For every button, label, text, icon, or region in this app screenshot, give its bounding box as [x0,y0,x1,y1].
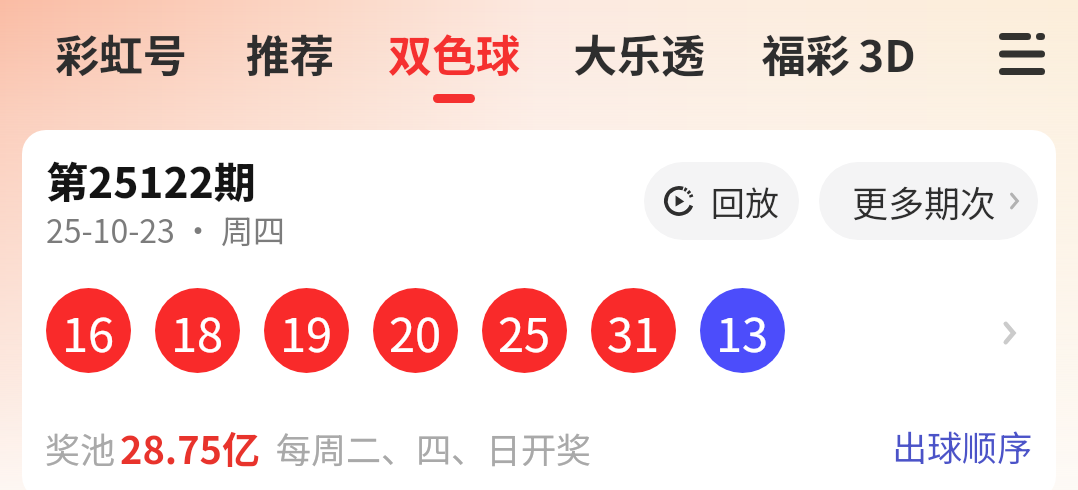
staticText: 福彩 3D [761,21,916,85]
staticText: 16 [62,297,115,365]
staticText: 25-10-23 · 周四 [46,206,286,252]
staticText: 31 [607,297,660,365]
staticText: 奖池 [45,422,116,473]
button[interactable]: 第25122期 [22,130,1056,490]
staticText: 13 [716,297,769,365]
staticText: 19 [280,297,333,365]
staticText: 25 [498,297,551,365]
button[interactable]: 彩虹号 [43,13,199,102]
button[interactable]: 大乐透 [561,13,717,102]
button[interactable]: More details [979,303,1039,363]
staticText: 出球顺序 [892,420,1033,471]
button[interactable]: 回放 [644,162,799,240]
staticText: 彩虹号 [55,21,187,85]
button[interactable]: 更多期次 [819,162,1038,240]
button[interactable]: 推荐 [234,13,346,102]
staticText: 每周二、四、日开奖 [276,422,592,473]
button[interactable]: 出球顺序 [884,412,1041,479]
button[interactable]: 双色球 [376,13,532,111]
staticText: 双色球 [388,21,520,85]
staticText: 更多期次 [852,175,997,227]
staticText: 推荐 [246,21,334,85]
staticText: 28.75亿 [120,420,261,475]
staticText: 18 [171,297,224,365]
staticText: 20 [389,297,442,365]
button[interactable]: 福彩 3D [749,13,928,102]
button[interactable]: Menu [991,23,1053,85]
staticText: 第25122期 [46,149,256,210]
staticText: 回放 [711,177,779,226]
staticText: 大乐透 [573,21,705,85]
